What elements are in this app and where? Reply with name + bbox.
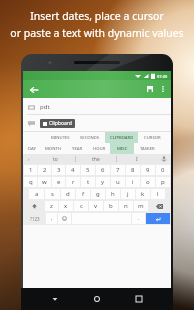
button[interactable]: pdt xyxy=(23,98,171,115)
staticText: . xyxy=(138,215,140,222)
button[interactable]: j xyxy=(121,189,135,199)
button[interactable]: to xyxy=(35,154,75,164)
button[interactable]: 8 xyxy=(126,165,140,175)
staticText: CURSOR xyxy=(144,135,161,141)
button[interactable]: 1 xyxy=(24,165,37,175)
button[interactable]: v xyxy=(89,201,103,211)
button[interactable]: TASKER xyxy=(134,143,161,154)
button[interactable]: the xyxy=(76,154,116,164)
staticText: h xyxy=(111,190,115,198)
staticText: w xyxy=(42,178,47,186)
button[interactable]: b xyxy=(104,201,118,211)
button[interactable]: l xyxy=(151,189,165,199)
staticText: 5 xyxy=(86,166,90,174)
staticText: MONTH xyxy=(45,146,61,152)
staticText: 0 xyxy=(161,166,165,174)
staticText: or paste a text with dynamic values xyxy=(10,26,184,40)
staticText: 6 xyxy=(101,166,105,174)
button[interactable]: n xyxy=(119,201,133,211)
button[interactable]: 4 xyxy=(66,165,80,175)
button[interactable]: Expand suggestions xyxy=(23,154,35,164)
staticText: 1 xyxy=(29,166,33,174)
staticText: a xyxy=(35,190,39,198)
staticText: k xyxy=(141,190,145,198)
staticText: MINUTES xyxy=(51,135,70,141)
button[interactable]: e xyxy=(52,177,65,187)
button[interactable]: Back xyxy=(47,291,63,307)
button[interactable]: i xyxy=(126,177,140,187)
staticText: p xyxy=(161,178,165,186)
button[interactable]: h xyxy=(106,189,120,199)
button[interactable]: Home xyxy=(89,291,105,307)
button[interactable]: 9 xyxy=(141,165,155,175)
staticText: the xyxy=(92,156,100,163)
button[interactable]: a xyxy=(29,189,44,199)
button[interactable]: Recent apps xyxy=(131,291,147,307)
button[interactable]: c xyxy=(74,201,88,211)
button[interactable]: I xyxy=(117,154,157,164)
button[interactable]: x xyxy=(59,201,73,211)
button[interactable]: SECONDS xyxy=(75,132,105,143)
button[interactable]: . xyxy=(132,213,145,224)
staticText: r xyxy=(72,178,75,186)
staticText: d xyxy=(66,190,70,198)
button[interactable]: Clipboard xyxy=(23,115,171,132)
button[interactable]: 7 xyxy=(111,165,125,175)
staticText: I xyxy=(136,156,138,163)
button[interactable]: Voice input xyxy=(157,154,171,164)
button[interactable]: m xyxy=(134,201,148,211)
button[interactable]: s xyxy=(45,189,60,199)
button[interactable]: g xyxy=(91,189,105,199)
staticText: HOUR xyxy=(93,146,106,152)
button[interactable]: w xyxy=(38,177,51,187)
staticText: › xyxy=(28,156,30,163)
button[interactable]: MISC xyxy=(110,143,134,154)
button[interactable]: MINUTES xyxy=(45,132,75,143)
button[interactable]: Emoji xyxy=(58,213,71,224)
staticText: CLIPBOARD xyxy=(110,135,134,141)
staticText: DAY xyxy=(28,146,36,152)
button[interactable]: u xyxy=(111,177,125,187)
button[interactable]: 0 xyxy=(156,165,170,175)
button[interactable]: Key xyxy=(24,201,44,211)
staticText: v xyxy=(94,202,98,210)
button[interactable]: More options xyxy=(157,83,169,95)
staticText: b xyxy=(109,202,113,210)
button[interactable]: MONTH xyxy=(40,143,66,154)
button[interactable]: p xyxy=(156,177,170,187)
staticText: o xyxy=(146,178,150,186)
button[interactable]: t xyxy=(81,177,95,187)
button[interactable]: k xyxy=(136,189,150,199)
staticText: 7 xyxy=(116,166,120,174)
staticText: z xyxy=(50,202,53,210)
button[interactable]: CURSOR xyxy=(138,132,166,143)
button[interactable]: Back xyxy=(27,83,40,96)
button[interactable]: q xyxy=(24,177,37,187)
button[interactable]: Enter xyxy=(146,213,170,224)
button[interactable]: y xyxy=(96,177,110,187)
button[interactable]: HOUR xyxy=(88,143,110,154)
button[interactable]: 2 xyxy=(38,165,51,175)
button[interactable]: 5 xyxy=(81,165,95,175)
button[interactable]: , xyxy=(46,213,57,224)
button[interactable]: r xyxy=(66,177,80,187)
button[interactable]: Key xyxy=(149,201,170,211)
button[interactable]: z xyxy=(45,201,58,211)
button[interactable]: f xyxy=(76,189,90,199)
button[interactable]: Save xyxy=(143,82,157,96)
button[interactable]: DAY xyxy=(23,143,40,154)
staticText: Clipboard xyxy=(49,120,72,127)
staticText: TASKER xyxy=(140,146,155,152)
button[interactable]: CLIPBOARD xyxy=(105,132,138,143)
button[interactable]: YEAR xyxy=(66,143,88,154)
button[interactable]: o xyxy=(141,177,155,187)
button[interactable]: ?123 xyxy=(24,213,45,224)
button[interactable]: 6 xyxy=(96,165,110,175)
staticText: 3 xyxy=(57,166,61,174)
staticText: , xyxy=(51,215,53,222)
staticText: x xyxy=(64,202,68,210)
staticText: 8 xyxy=(131,166,135,174)
button[interactable]: 3 xyxy=(52,165,65,175)
button[interactable]: d xyxy=(61,189,75,199)
